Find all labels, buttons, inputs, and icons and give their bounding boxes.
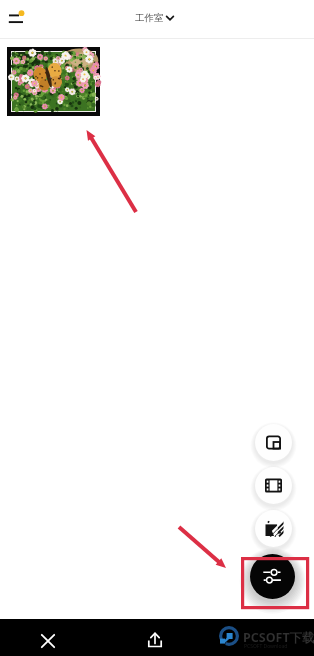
button[interactable]: Layout [255,424,292,461]
staticText: PCSOFT下载 [243,629,314,646]
button[interactable]: Menu [2,1,30,29]
button[interactable]: Share [140,625,170,655]
button[interactable]: 工作室 [135,12,174,24]
button[interactable]: Project thumbnail [7,47,100,116]
staticText: PCSOFT Download [244,643,288,650]
button[interactable]: Adjust [250,554,295,599]
button[interactable]: Video [255,467,292,504]
staticText: 工作室 [135,12,164,24]
button[interactable]: Adjust texture [255,510,292,547]
button[interactable]: Close [33,626,63,656]
